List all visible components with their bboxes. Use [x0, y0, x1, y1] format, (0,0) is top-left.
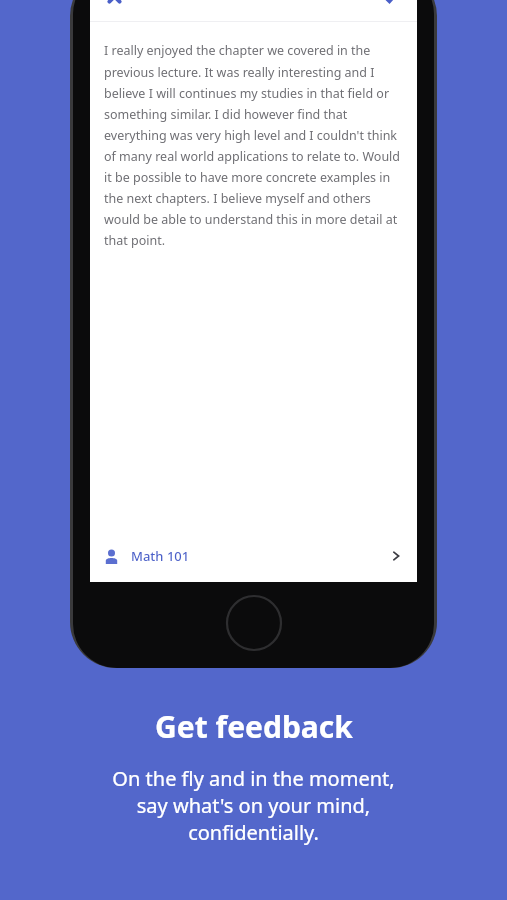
staticText: Get feedback	[155, 706, 353, 747]
button[interactable]: Send	[371, 0, 411, 16]
staticText: On the fly and in the moment, say what's…	[112, 765, 395, 846]
button[interactable]: Math 101	[90, 532, 417, 580]
button[interactable]: Close	[94, 0, 134, 16]
staticText: I really enjoyed the chapter we covered …	[104, 42, 401, 248]
staticText: Math 101	[131, 547, 190, 565]
